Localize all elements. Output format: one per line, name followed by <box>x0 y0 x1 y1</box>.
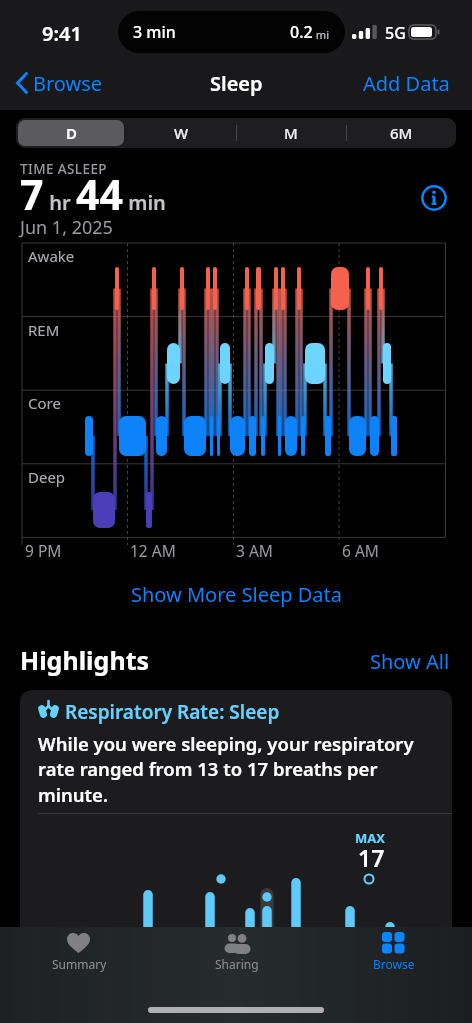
staticText: 17 <box>358 842 385 873</box>
button[interactable]: 6M <box>346 118 456 148</box>
staticText: TIME ASLEEP <box>20 160 107 178</box>
staticText: 44 <box>76 166 123 222</box>
staticText: 5G <box>385 22 406 44</box>
button[interactable]: D <box>18 120 124 146</box>
staticText: min <box>123 189 166 216</box>
staticText: REM <box>28 320 60 340</box>
staticText: Show More Sleep Data <box>131 581 342 608</box>
staticText: 0.2 <box>290 21 313 43</box>
button[interactable]: Summary <box>0 927 158 972</box>
staticText: Browse <box>33 70 103 97</box>
staticText: Add Data <box>363 70 450 97</box>
button[interactable]: Sharing <box>158 927 315 972</box>
button[interactable]: M <box>236 118 346 148</box>
button[interactable]: Browse <box>33 70 103 97</box>
button[interactable] <box>421 185 447 211</box>
staticText: Browse <box>373 956 415 972</box>
button[interactable]: Add Data <box>363 70 450 97</box>
staticText: Awake <box>28 246 75 266</box>
staticText: Show All <box>370 648 450 675</box>
staticText: Respiratory Rate: Sleep <box>65 699 280 725</box>
staticText: Sleep <box>210 70 263 97</box>
button[interactable]: Show More Sleep Data <box>0 581 472 608</box>
staticText: 9:41 <box>42 20 82 47</box>
staticText: MAX <box>355 829 385 847</box>
staticText: Summary <box>52 956 107 972</box>
staticText: 3 AM <box>236 540 273 561</box>
staticText: Jun 1, 2025 <box>20 215 113 240</box>
staticText: M <box>284 123 298 143</box>
staticText: W <box>174 123 189 143</box>
staticText: hr <box>44 189 76 216</box>
staticText: While you were sleeping, your respirator… <box>38 731 440 808</box>
staticText: D <box>66 123 77 143</box>
staticText: 7 <box>20 166 44 222</box>
staticText: 3 min <box>133 21 176 43</box>
staticText: 6 AM <box>342 540 379 561</box>
staticText: 9 PM <box>25 540 62 561</box>
staticText: 12 AM <box>130 540 176 561</box>
button[interactable]: Show All <box>370 648 450 675</box>
button[interactable]: W <box>126 118 236 148</box>
button[interactable]: Respiratory Rate: Sleep <box>20 690 452 1023</box>
staticText: Highlights <box>20 643 150 677</box>
staticText: Sharing <box>215 956 259 972</box>
button[interactable]: Browse <box>315 927 472 972</box>
staticText: mi <box>313 27 330 42</box>
staticText: Core <box>28 393 61 413</box>
staticText: 6M <box>390 123 413 143</box>
staticText: Deep <box>28 467 66 487</box>
